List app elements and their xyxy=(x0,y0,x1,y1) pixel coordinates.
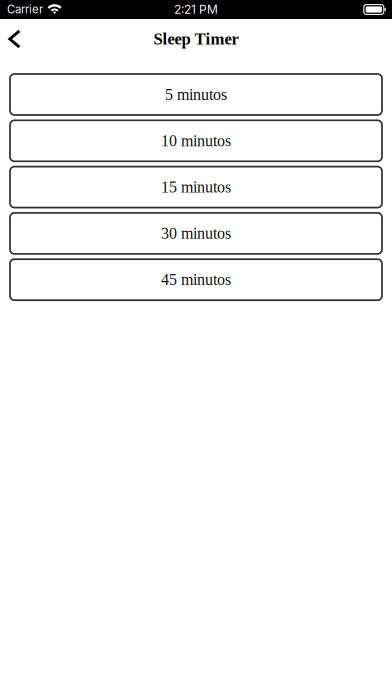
staticText: 15 minutos xyxy=(161,178,231,196)
button[interactable]: 10 minutos xyxy=(10,120,382,161)
staticText: Sleep Timer xyxy=(153,30,238,48)
button[interactable]: 30 minutos xyxy=(10,213,382,254)
staticText: Carrier xyxy=(7,3,43,16)
button[interactable]: 45 minutos xyxy=(10,259,382,300)
staticText: 2:21 PM xyxy=(174,2,218,17)
staticText: 45 minutos xyxy=(161,271,231,288)
button[interactable]: Back xyxy=(0,20,33,57)
staticText: 5 minutos xyxy=(165,86,227,103)
staticText: 30 minutos xyxy=(161,224,231,242)
staticText: 10 minutos xyxy=(161,132,231,150)
button[interactable]: 15 minutos xyxy=(10,167,382,208)
button[interactable]: 5 minutos xyxy=(10,74,382,115)
